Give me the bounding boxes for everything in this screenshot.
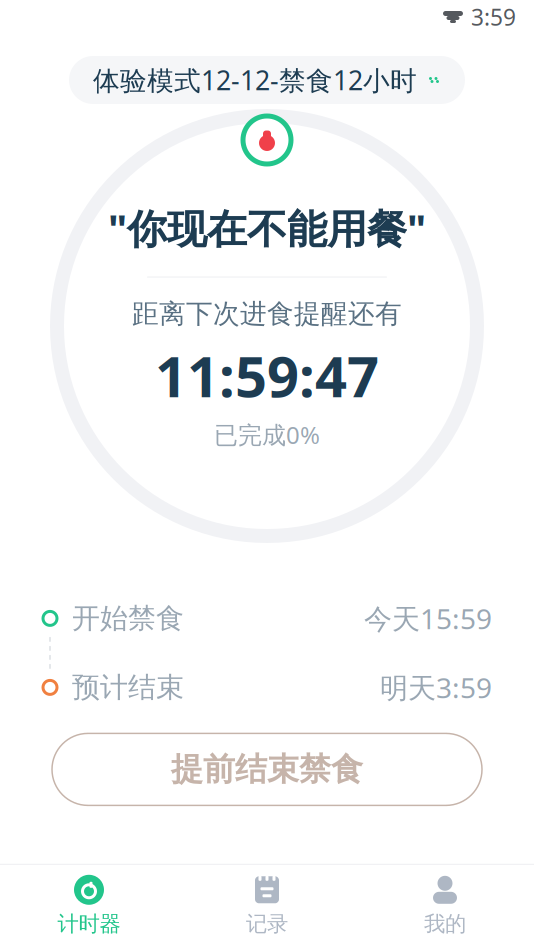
staticText: 记录	[246, 911, 288, 937]
staticText: 我的	[424, 911, 466, 937]
staticText: "你现在不能用餐"	[108, 201, 426, 254]
staticText: 3:59	[471, 2, 516, 32]
staticText: 预计结束	[72, 670, 184, 705]
staticText: 计时器	[57, 911, 120, 937]
staticText: 今天15:59	[364, 600, 492, 637]
staticText: 明天3:59	[380, 669, 492, 706]
staticText: 开始禁食	[72, 601, 184, 636]
button[interactable]: 提前结束禁食	[52, 733, 482, 805]
staticText: 提前结束禁食	[171, 750, 363, 789]
staticText: 体验模式12-12-禁食12小时	[93, 62, 417, 98]
button[interactable]: 体验模式12-12-禁食12小时	[69, 56, 465, 104]
button[interactable]: 我的	[356, 865, 534, 949]
staticText: 已完成0%	[214, 419, 320, 451]
button[interactable]: 计时器	[0, 865, 178, 949]
button[interactable]: 记录	[178, 865, 356, 949]
staticText: 11:59:47	[155, 338, 379, 413]
staticText: 距离下次进食提醒还有	[132, 298, 402, 330]
